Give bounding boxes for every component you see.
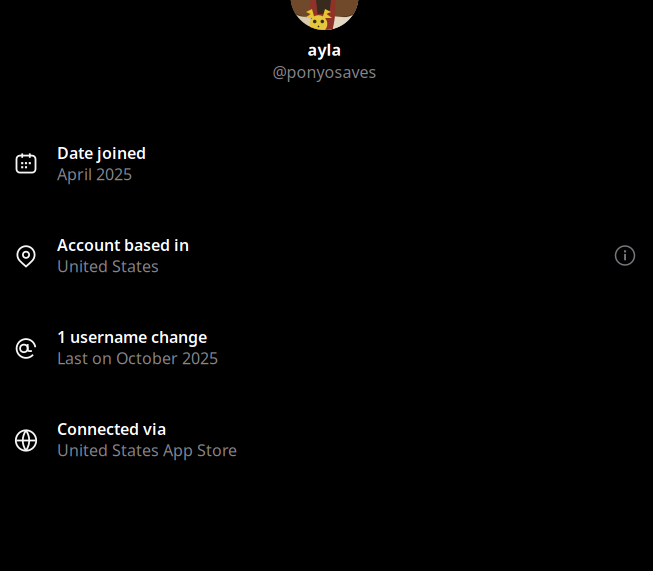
button[interactable]: Date joined	[0, 142, 653, 184]
button[interactable]: Account based in	[0, 234, 653, 276]
staticText: 1 username change	[57, 326, 207, 347]
staticText: United States	[57, 255, 159, 277]
staticText: Last on October 2025	[57, 347, 218, 369]
staticText: United States App Store	[57, 439, 237, 461]
staticText: Connected via	[57, 418, 166, 439]
staticText: Account based in	[57, 234, 189, 255]
button[interactable]: About account location	[604, 234, 646, 276]
staticText: April 2025	[57, 163, 132, 185]
staticText: Date joined	[57, 142, 146, 163]
button[interactable]: 1 username change	[0, 326, 653, 368]
staticText: ayla	[307, 39, 341, 60]
button[interactable]: ayla	[272, 0, 376, 82]
button[interactable]: Connected via	[0, 418, 653, 460]
staticText: @ponyosaves	[272, 61, 376, 82]
